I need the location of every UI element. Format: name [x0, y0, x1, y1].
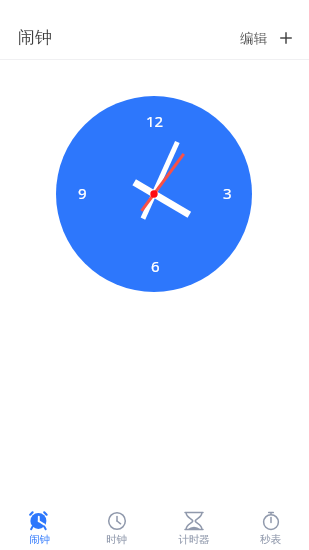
staticText: 12	[146, 111, 164, 131]
staticText: 闹钟	[29, 533, 50, 546]
button[interactable]: 计时器	[155, 493, 232, 550]
button[interactable]: 秒表	[232, 493, 309, 550]
staticText: 秒表	[260, 533, 281, 546]
button[interactable]: Add alarm	[274, 26, 298, 50]
staticText: 编辑	[240, 30, 267, 47]
staticText: 6	[151, 256, 160, 276]
staticText: 闹钟	[18, 27, 52, 48]
staticText: 时钟	[106, 533, 127, 546]
staticText: 3	[223, 183, 232, 203]
button[interactable]: 时钟	[78, 493, 155, 550]
staticText: 计时器	[178, 533, 210, 546]
button[interactable]: 编辑	[236, 27, 271, 50]
button[interactable]: 闹钟	[0, 493, 78, 550]
staticText: 9	[78, 183, 87, 203]
